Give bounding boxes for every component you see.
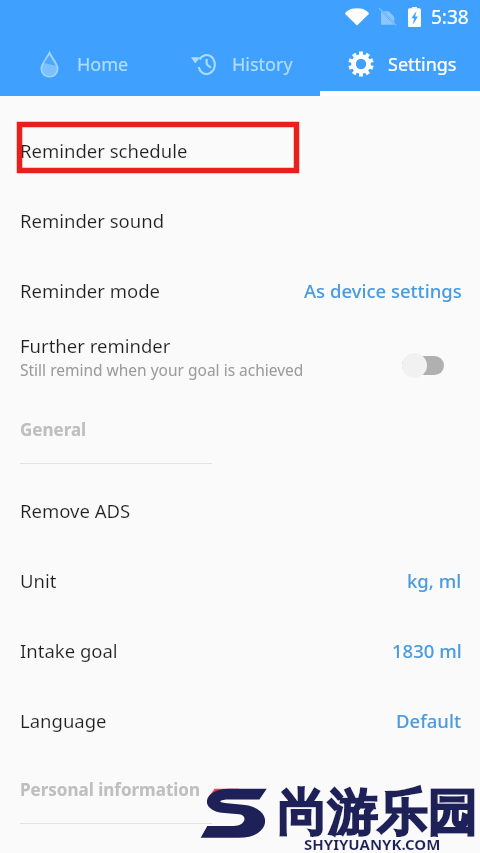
staticText: Intake goal bbox=[20, 638, 118, 663]
staticText: SHYIYUANYK.COM bbox=[304, 834, 441, 853]
staticText: 5:38 bbox=[431, 4, 469, 30]
button[interactable]: History bbox=[160, 35, 320, 93]
button[interactable]: Home bbox=[0, 35, 160, 93]
staticText: Reminder schedule bbox=[20, 138, 188, 163]
staticText: Language bbox=[20, 708, 107, 733]
staticText: kg, ml bbox=[407, 568, 462, 593]
button[interactable]: Reminder schedule bbox=[0, 115, 480, 185]
staticText: Default bbox=[396, 708, 462, 733]
button[interactable]: Unit bbox=[0, 545, 480, 615]
button[interactable]: Settings bbox=[320, 35, 480, 93]
button[interactable]: Intake goal bbox=[0, 615, 480, 685]
staticText: Further reminder bbox=[20, 333, 171, 358]
staticText: Still remind when your goal is achieved bbox=[20, 359, 304, 380]
staticText: As device settings bbox=[304, 278, 462, 303]
button[interactable]: Further reminder bbox=[0, 325, 480, 395]
staticText: Home bbox=[77, 52, 129, 77]
button[interactable]: Reminder mode bbox=[0, 255, 480, 325]
staticText: Unit bbox=[20, 568, 57, 593]
staticText: 尚游乐园 bbox=[277, 782, 477, 845]
staticText: 1830 ml bbox=[392, 638, 462, 663]
button[interactable]: Language bbox=[0, 685, 480, 755]
button[interactable]: Remove ADS bbox=[0, 475, 480, 545]
staticText: Reminder mode bbox=[20, 278, 161, 303]
staticText: Remove ADS bbox=[20, 498, 131, 523]
staticText: Personal information bbox=[20, 778, 201, 801]
button[interactable]: Reminder sound bbox=[0, 185, 480, 255]
staticText: History bbox=[232, 52, 293, 77]
staticText: Reminder sound bbox=[20, 208, 165, 233]
staticText: General bbox=[20, 418, 87, 441]
staticText: Settings bbox=[388, 52, 457, 77]
